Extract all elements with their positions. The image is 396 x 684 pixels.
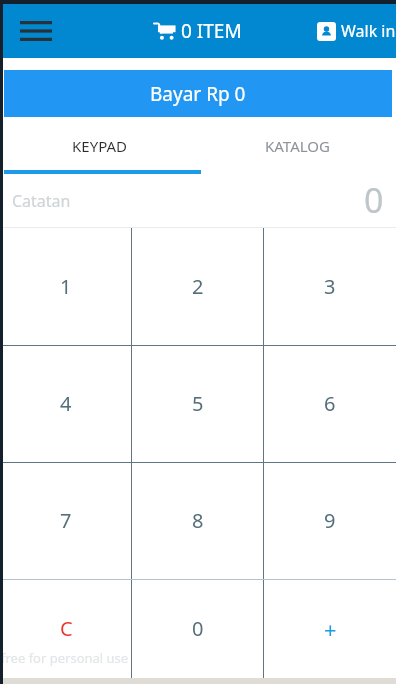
staticText: 4: [60, 390, 72, 417]
staticText: 0 ITEM: [181, 18, 242, 44]
button[interactable]: 7: [0, 462, 132, 579]
button[interactable]: 0: [132, 579, 264, 678]
button[interactable]: 8: [132, 462, 264, 579]
staticText: Walk in: [341, 20, 396, 42]
staticText: Catatan: [12, 190, 71, 212]
button[interactable]: Bayar Rp 0: [4, 70, 392, 117]
button[interactable]: +: [264, 579, 396, 678]
staticText: 6: [324, 390, 336, 417]
button[interactable]: Open navigation menu: [14, 9, 58, 53]
staticText: 2: [192, 273, 204, 300]
staticText: 9: [324, 507, 336, 534]
button[interactable]: KEYPAD: [0, 117, 198, 174]
staticText: KEYPAD: [72, 136, 127, 156]
staticText: KATALOG: [265, 136, 330, 156]
button[interactable]: 6: [264, 345, 396, 462]
button[interactable]: 0 ITEM: [154, 18, 242, 44]
staticText: +: [324, 614, 337, 644]
staticText: 3: [324, 273, 336, 300]
staticText: 8: [192, 507, 204, 534]
staticText: free for personal use: [1, 649, 129, 667]
staticText: Bayar Rp 0: [150, 81, 246, 107]
button[interactable]: 5: [132, 345, 264, 462]
staticText: 7: [60, 507, 72, 534]
staticText: 0: [364, 177, 384, 223]
staticText: 1: [60, 273, 72, 300]
button[interactable]: C: [0, 579, 132, 678]
button[interactable]: KATALOG: [198, 117, 396, 174]
staticText: 5: [192, 390, 204, 417]
button[interactable]: 2: [132, 228, 264, 345]
button[interactable]: 1: [0, 228, 132, 345]
button[interactable]: 9: [264, 462, 396, 579]
button[interactable]: 3: [264, 228, 396, 345]
button[interactable]: 4: [0, 345, 132, 462]
staticText: 0: [192, 615, 204, 642]
staticText: C: [60, 615, 73, 642]
button[interactable]: Walk in: [317, 20, 396, 42]
